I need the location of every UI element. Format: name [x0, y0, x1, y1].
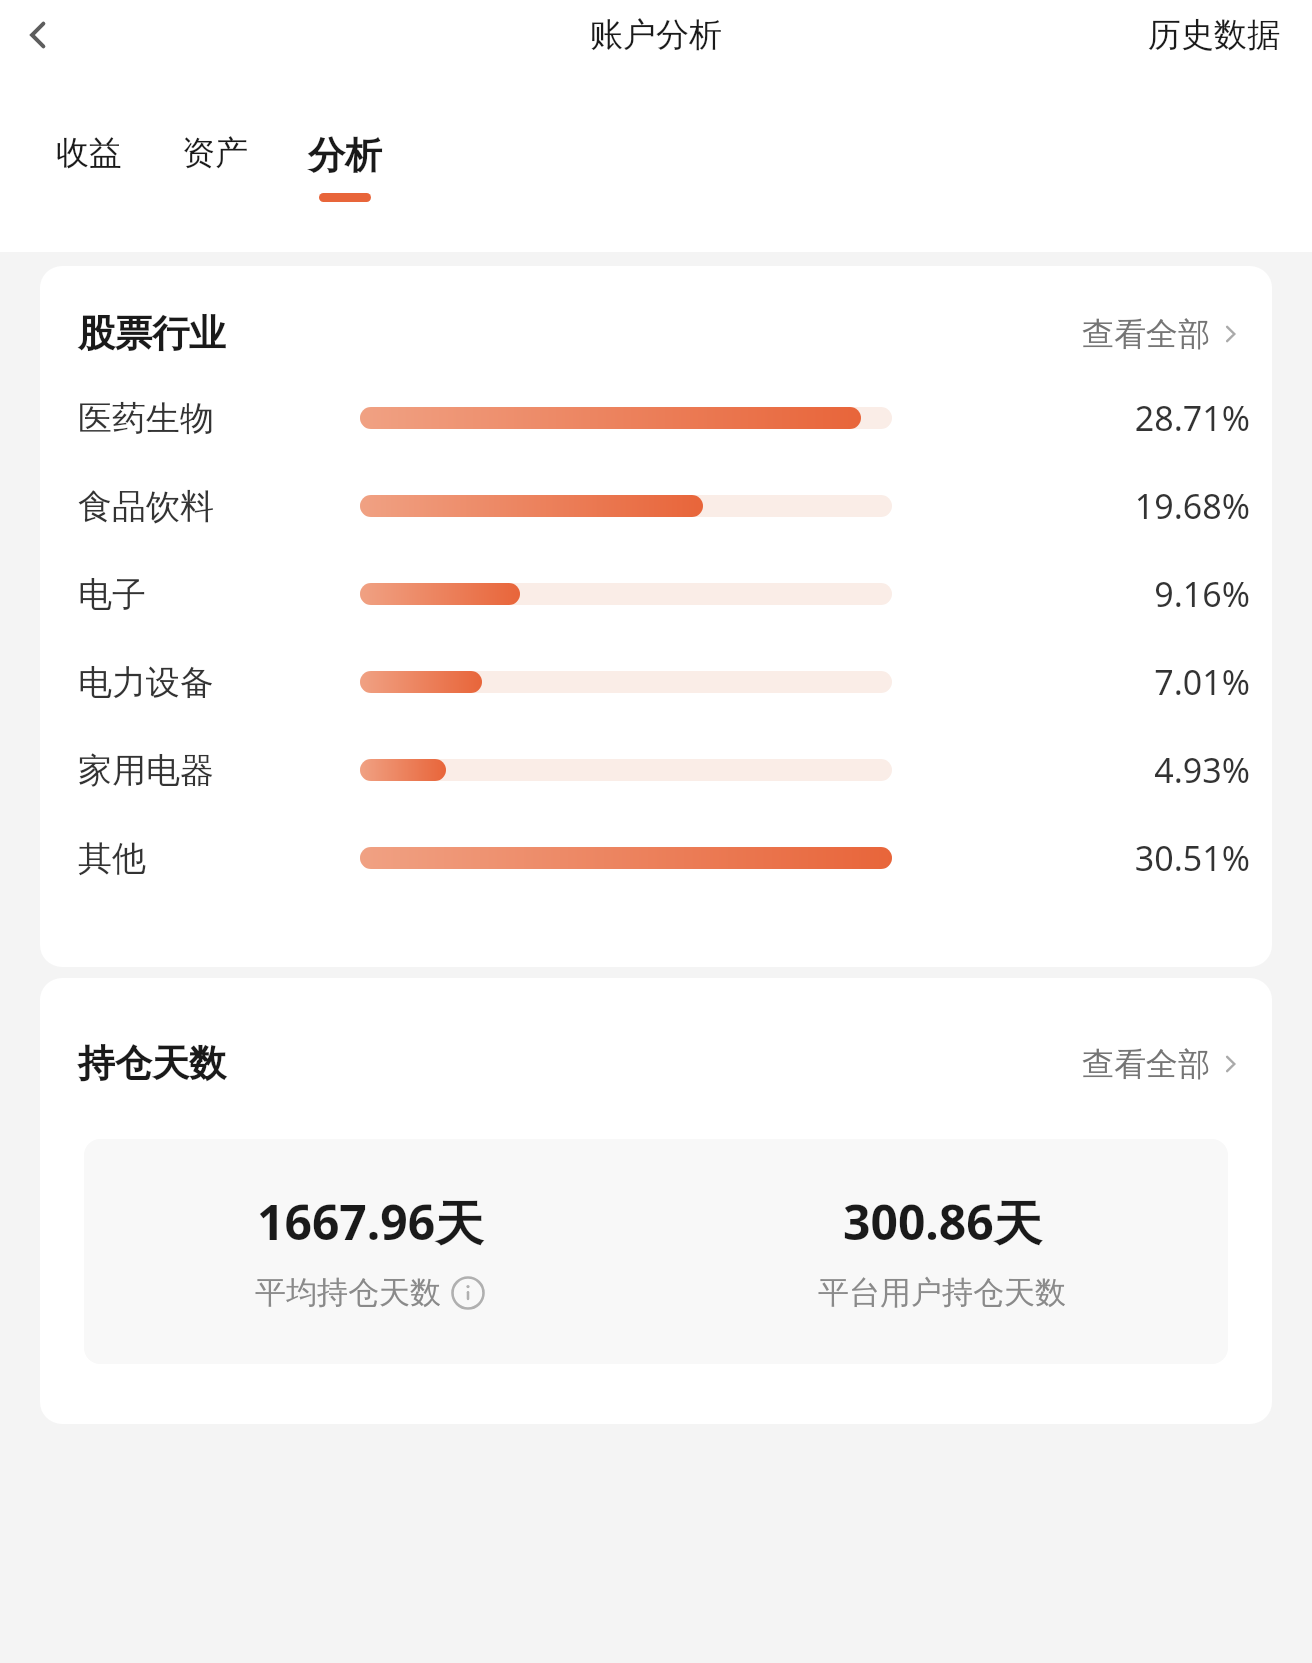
other: Info — [451, 1276, 485, 1310]
button[interactable]: 查看全部 — [1082, 1044, 1242, 1084]
button[interactable]: 分析 — [308, 132, 382, 202]
button[interactable]: 家用电器 — [40, 747, 1272, 793]
button[interactable]: 收益 — [56, 132, 122, 197]
staticText: 账户分析 — [590, 14, 722, 56]
button[interactable]: 1667.96天 — [84, 1189, 656, 1312]
staticText: 平台用户持仓天数 — [818, 1273, 1066, 1312]
staticText: 30.51% — [1040, 835, 1250, 881]
button[interactable]: 资产 — [182, 132, 248, 197]
staticText: 历史数据 — [1148, 14, 1280, 56]
staticText: 持仓天数 — [78, 1040, 226, 1087]
staticText: 19.68% — [1040, 483, 1250, 529]
button[interactable]: 电力设备 — [40, 659, 1272, 705]
button[interactable]: Back — [10, 7, 66, 63]
button[interactable]: 历史数据 — [1148, 14, 1312, 56]
staticText: 股票行业 — [78, 310, 226, 357]
staticText: 查看全部 — [1082, 1044, 1210, 1084]
button[interactable]: 食品饮料 — [40, 483, 1272, 529]
staticText: 1667.96天 — [257, 1189, 484, 1255]
staticText: 平均持仓天数 — [255, 1273, 441, 1312]
staticText: 9.16% — [1040, 571, 1250, 617]
staticText: 7.01% — [1040, 659, 1250, 705]
staticText: 食品饮料 — [78, 485, 214, 528]
staticText: 28.71% — [1040, 395, 1250, 441]
staticText: 4.93% — [1040, 747, 1250, 793]
staticText: 查看全部 — [1082, 314, 1210, 354]
staticText: 电力设备 — [78, 661, 214, 704]
staticText: 家用电器 — [78, 749, 214, 792]
button[interactable]: 查看全部 — [1082, 314, 1242, 354]
button[interactable]: 其他 — [40, 835, 1272, 881]
button[interactable]: 医药生物 — [40, 395, 1272, 441]
button[interactable]: 电子 — [40, 571, 1272, 617]
staticText: 资产 — [182, 132, 248, 174]
staticText: 电子 — [78, 573, 146, 616]
staticText: 其他 — [78, 837, 146, 880]
staticText: 收益 — [56, 132, 122, 174]
staticText: 医药生物 — [78, 397, 214, 440]
staticText: 分析 — [308, 132, 382, 179]
button[interactable]: 300.86天 — [656, 1189, 1228, 1312]
staticText: 300.86天 — [843, 1189, 1042, 1255]
